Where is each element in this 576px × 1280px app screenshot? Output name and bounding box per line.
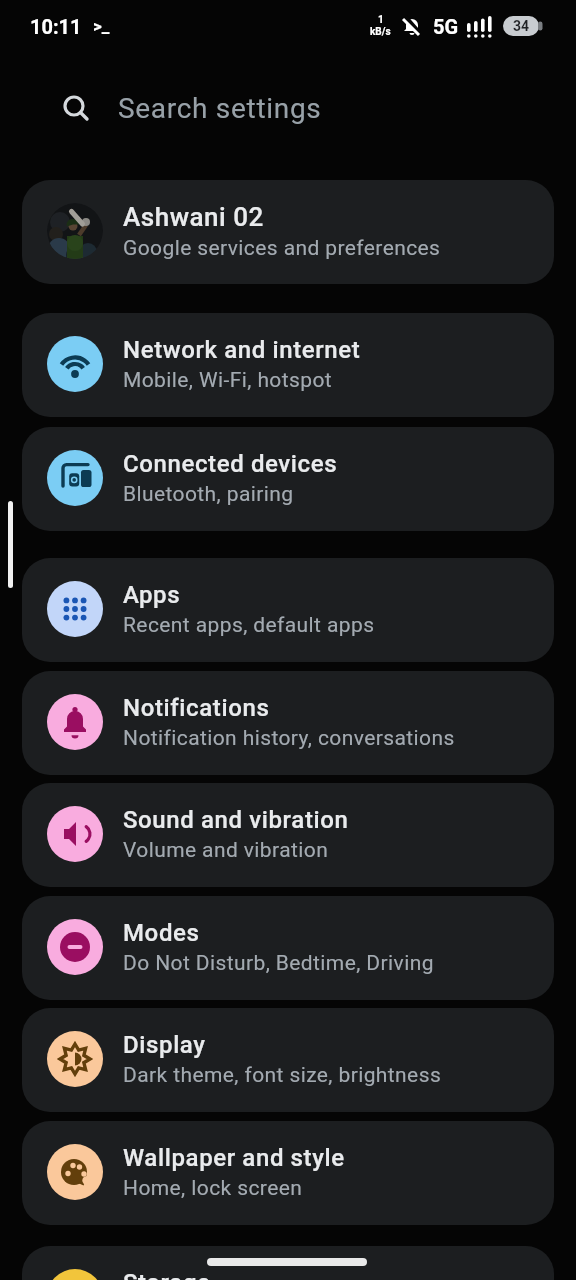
staticText: Storage (123, 1269, 211, 1280)
button[interactable]: Wallpaper and style (22, 1121, 554, 1225)
staticText: Home, lock screen (123, 1176, 303, 1201)
staticText: Search settings (118, 92, 322, 125)
button[interactable]: Modes (22, 896, 554, 1000)
staticText: Dark theme, font size, brightness (123, 1063, 442, 1088)
staticText: Recent apps, default apps (123, 613, 375, 638)
staticText: Modes (123, 919, 200, 947)
staticText: Mobile, Wi-Fi, hotspot (123, 368, 333, 393)
staticText: Apps (123, 581, 181, 609)
button[interactable]: Search settings (0, 80, 576, 136)
staticText: Notifications (123, 694, 270, 722)
staticText: Notification history, conversations (123, 726, 455, 751)
staticText: Wallpaper and style (123, 1144, 345, 1172)
button[interactable]: Connected devices (22, 427, 554, 531)
staticText: 10:11 (30, 15, 82, 38)
staticText: 5G (433, 15, 459, 38)
button[interactable]: Apps (22, 558, 554, 662)
staticText: Connected devices (123, 450, 338, 478)
staticText: Do Not Disturb, Bedtime, Driving (123, 951, 434, 976)
staticText: Display (123, 1031, 206, 1059)
staticText: Ashwani 02 (123, 202, 264, 232)
staticText: 34 (513, 18, 530, 34)
staticText: kB/s (370, 26, 391, 38)
staticText: Volume and vibration (123, 838, 329, 863)
button[interactable]: Network and internet (22, 313, 554, 417)
staticText: Bluetooth, pairing (123, 482, 294, 507)
button[interactable]: Storage (22, 1246, 554, 1280)
staticText: Google services and preferences (123, 236, 441, 261)
button[interactable]: Sound and vibration (22, 783, 554, 887)
staticText: >_ (93, 16, 110, 36)
staticText: Network and internet (123, 336, 361, 364)
button[interactable]: Display (22, 1008, 554, 1112)
button[interactable]: Ashwani 02 (22, 180, 554, 284)
staticText: 1 (378, 14, 384, 26)
staticText: Sound and vibration (123, 806, 349, 834)
button[interactable]: Notifications (22, 671, 554, 775)
